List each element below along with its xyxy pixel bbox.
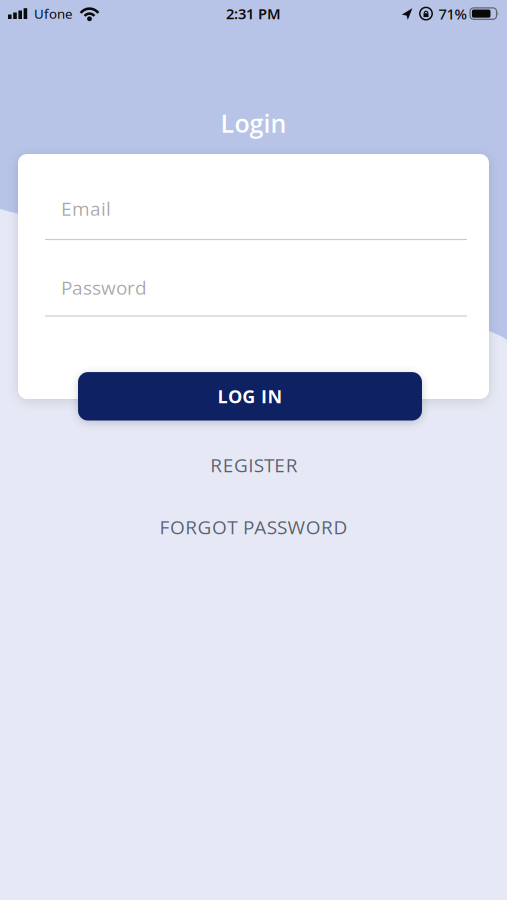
button[interactable]: Password xyxy=(45,272,467,320)
staticText: Ufone xyxy=(34,5,73,22)
staticText: 2:31 PM xyxy=(226,4,281,23)
staticText: 71% xyxy=(438,4,466,24)
button[interactable]: Email xyxy=(45,196,467,244)
staticText: REGISTER xyxy=(210,452,298,478)
staticText: LOG IN xyxy=(217,384,282,408)
button[interactable]: REGISTER xyxy=(210,452,298,478)
staticText: FORGOT PASSWORD xyxy=(160,514,347,540)
staticText: Email xyxy=(61,196,111,221)
button[interactable]: LOG IN xyxy=(78,372,422,421)
button[interactable]: FORGOT PASSWORD xyxy=(160,514,347,540)
staticText: Password xyxy=(61,275,147,300)
staticText: Login xyxy=(220,106,286,140)
